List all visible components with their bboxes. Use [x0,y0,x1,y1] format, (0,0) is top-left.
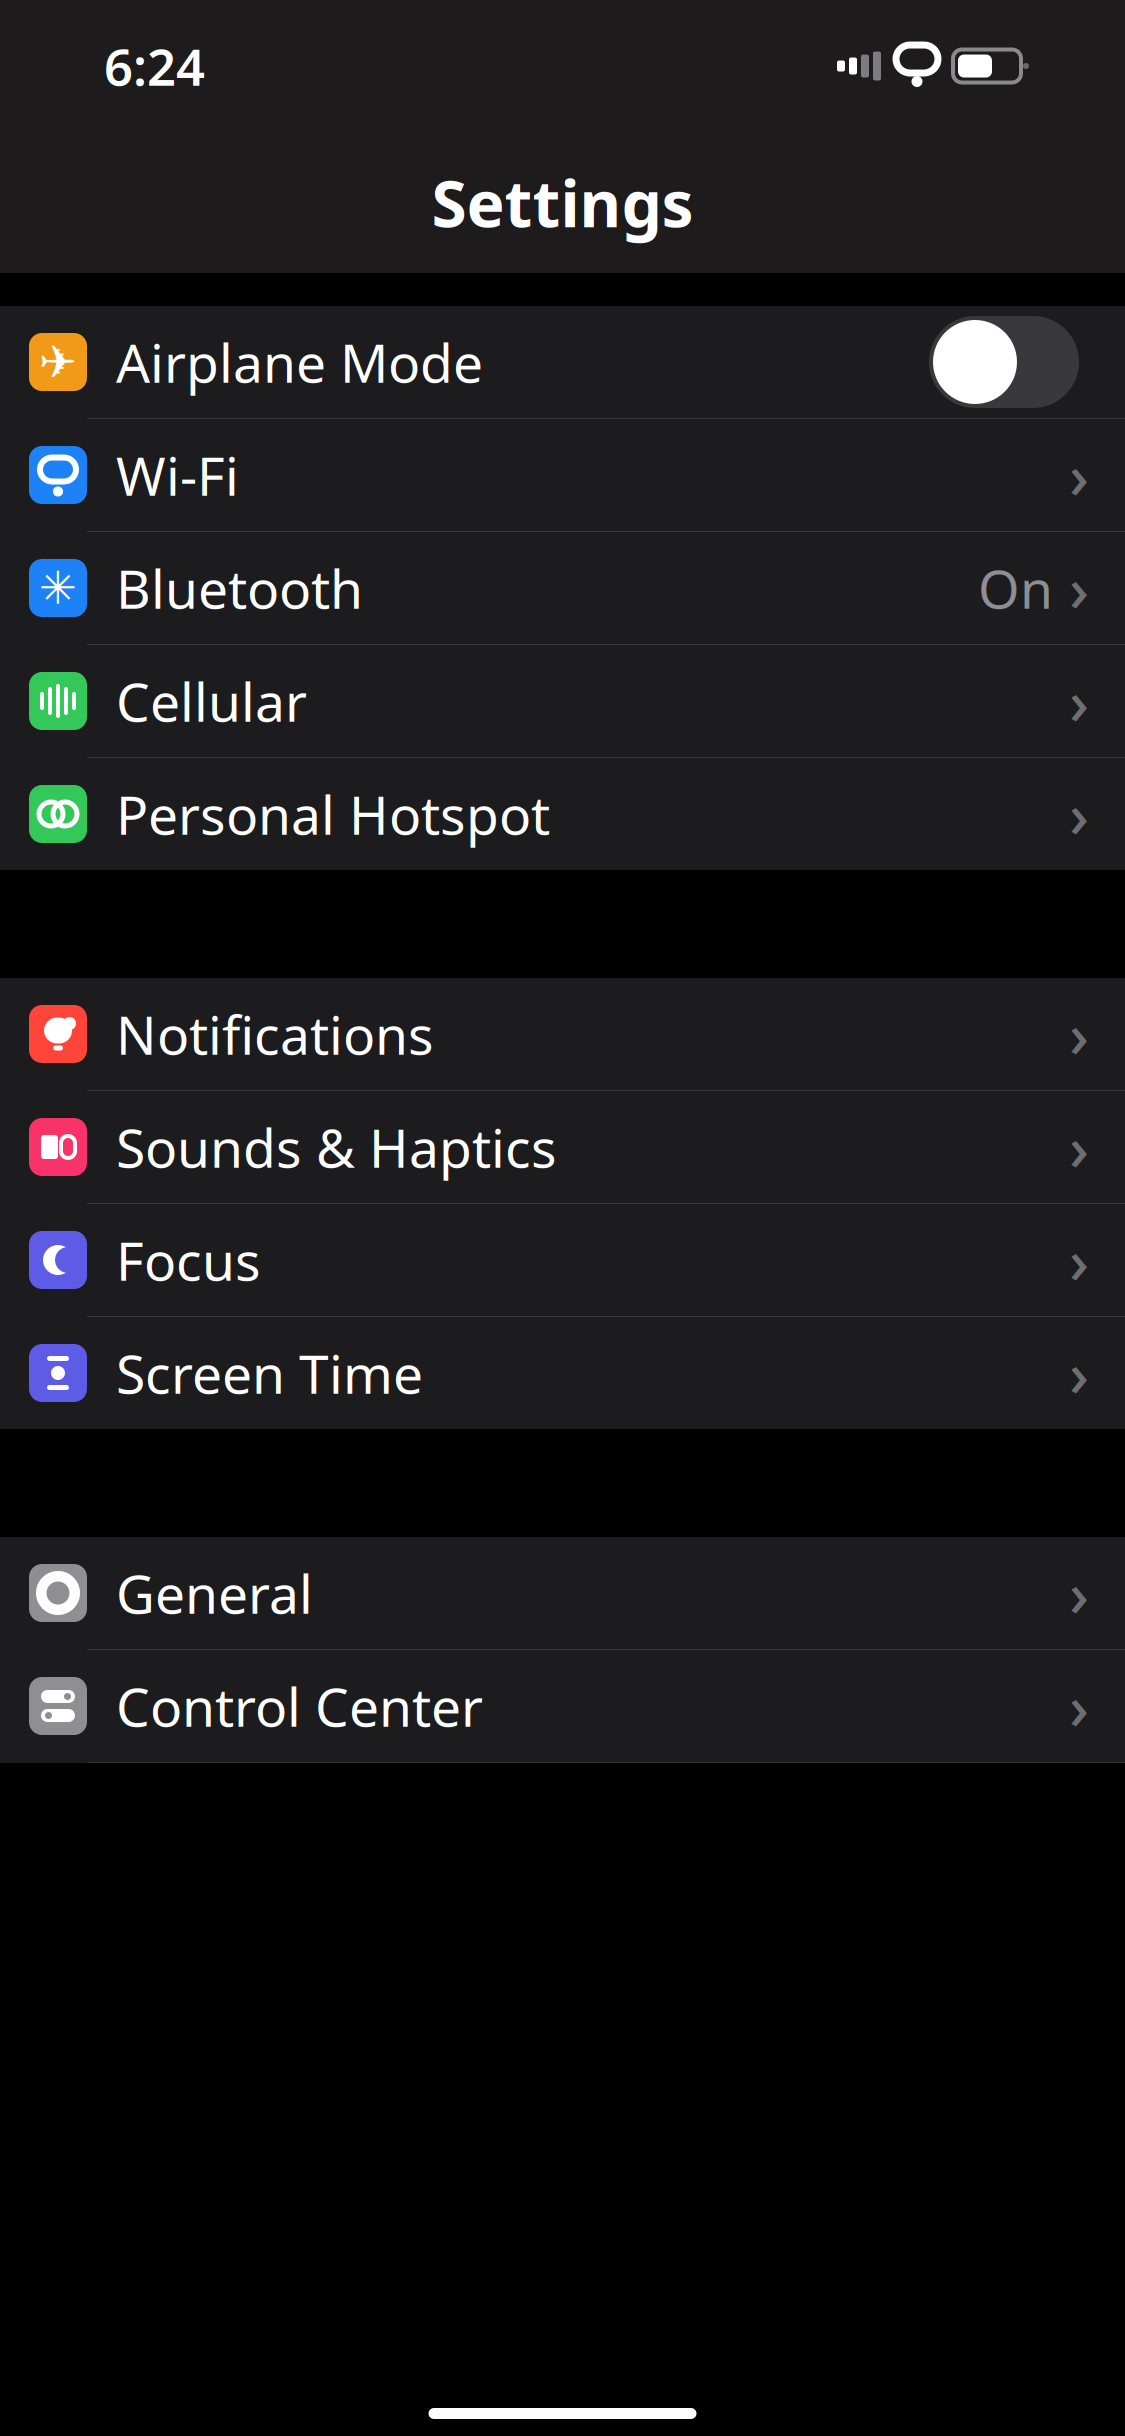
staticText: › [1069,660,1089,742]
button[interactable] [0,1537,1125,1649]
staticText: ✳ [39,562,77,614]
staticText: Notifications [116,999,434,1069]
staticText: › [1069,993,1089,1075]
button[interactable] [0,1650,1125,1762]
staticText: › [1069,1552,1089,1634]
button[interactable] [0,645,1125,757]
button[interactable] [0,532,1125,644]
button[interactable] [0,758,1125,870]
staticText: › [1069,1106,1089,1188]
button[interactable]: 📶 [0,419,1125,531]
staticText: Control Center [116,1671,483,1741]
staticText: ✈ [39,336,77,388]
staticText: Settings [431,160,693,245]
staticText: › [1069,773,1089,855]
button[interactable] [0,1317,1125,1429]
staticText: Airplane Mode [116,327,483,397]
staticText: › [1069,1332,1089,1414]
staticText: General [116,1558,313,1628]
staticText: Wi-Fi [116,440,239,510]
staticText: Cellular [116,666,307,736]
staticText: › [1069,434,1089,516]
staticText: Bluetooth [116,553,363,623]
button[interactable]: ✈ [0,306,1125,418]
staticText: Focus [116,1225,261,1295]
button[interactable]: 🔔 [0,978,1125,1090]
button[interactable] [0,1091,1125,1203]
staticText: › [1069,1219,1089,1301]
staticText: › [1069,1665,1089,1747]
staticText: › [1069,547,1089,629]
button[interactable] [0,1204,1125,1316]
staticText: Sounds & Haptics [116,1112,557,1182]
staticText: Personal Hotspot [116,779,550,849]
staticText: On [978,553,1053,623]
staticText: 6:24 [104,32,205,100]
staticText: Screen Time [116,1338,423,1408]
